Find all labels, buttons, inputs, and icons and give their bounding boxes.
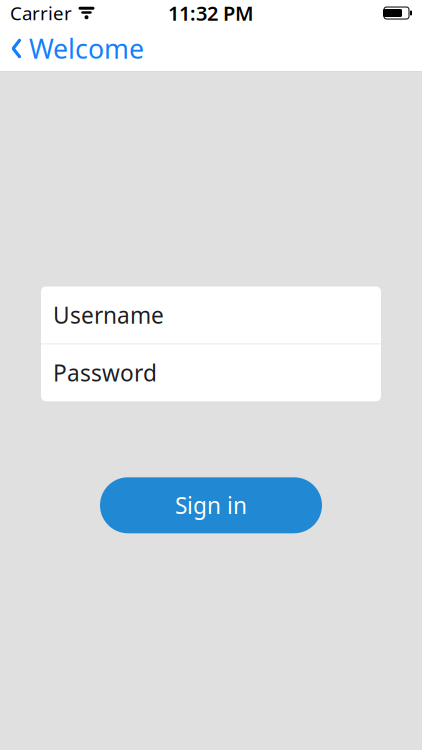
button[interactable]: Username — [41, 286, 381, 343]
button[interactable]: Password — [41, 344, 381, 401]
staticText: Password — [53, 358, 157, 388]
staticText: Username — [53, 300, 164, 330]
button[interactable]: Sign in — [100, 477, 322, 533]
staticText: Sign in — [175, 490, 247, 520]
staticText: Carrier — [10, 1, 72, 25]
staticText: Welcome — [29, 31, 144, 66]
button[interactable]: Welcome — [0, 26, 156, 71]
staticText: 11:32 PM — [168, 0, 254, 26]
